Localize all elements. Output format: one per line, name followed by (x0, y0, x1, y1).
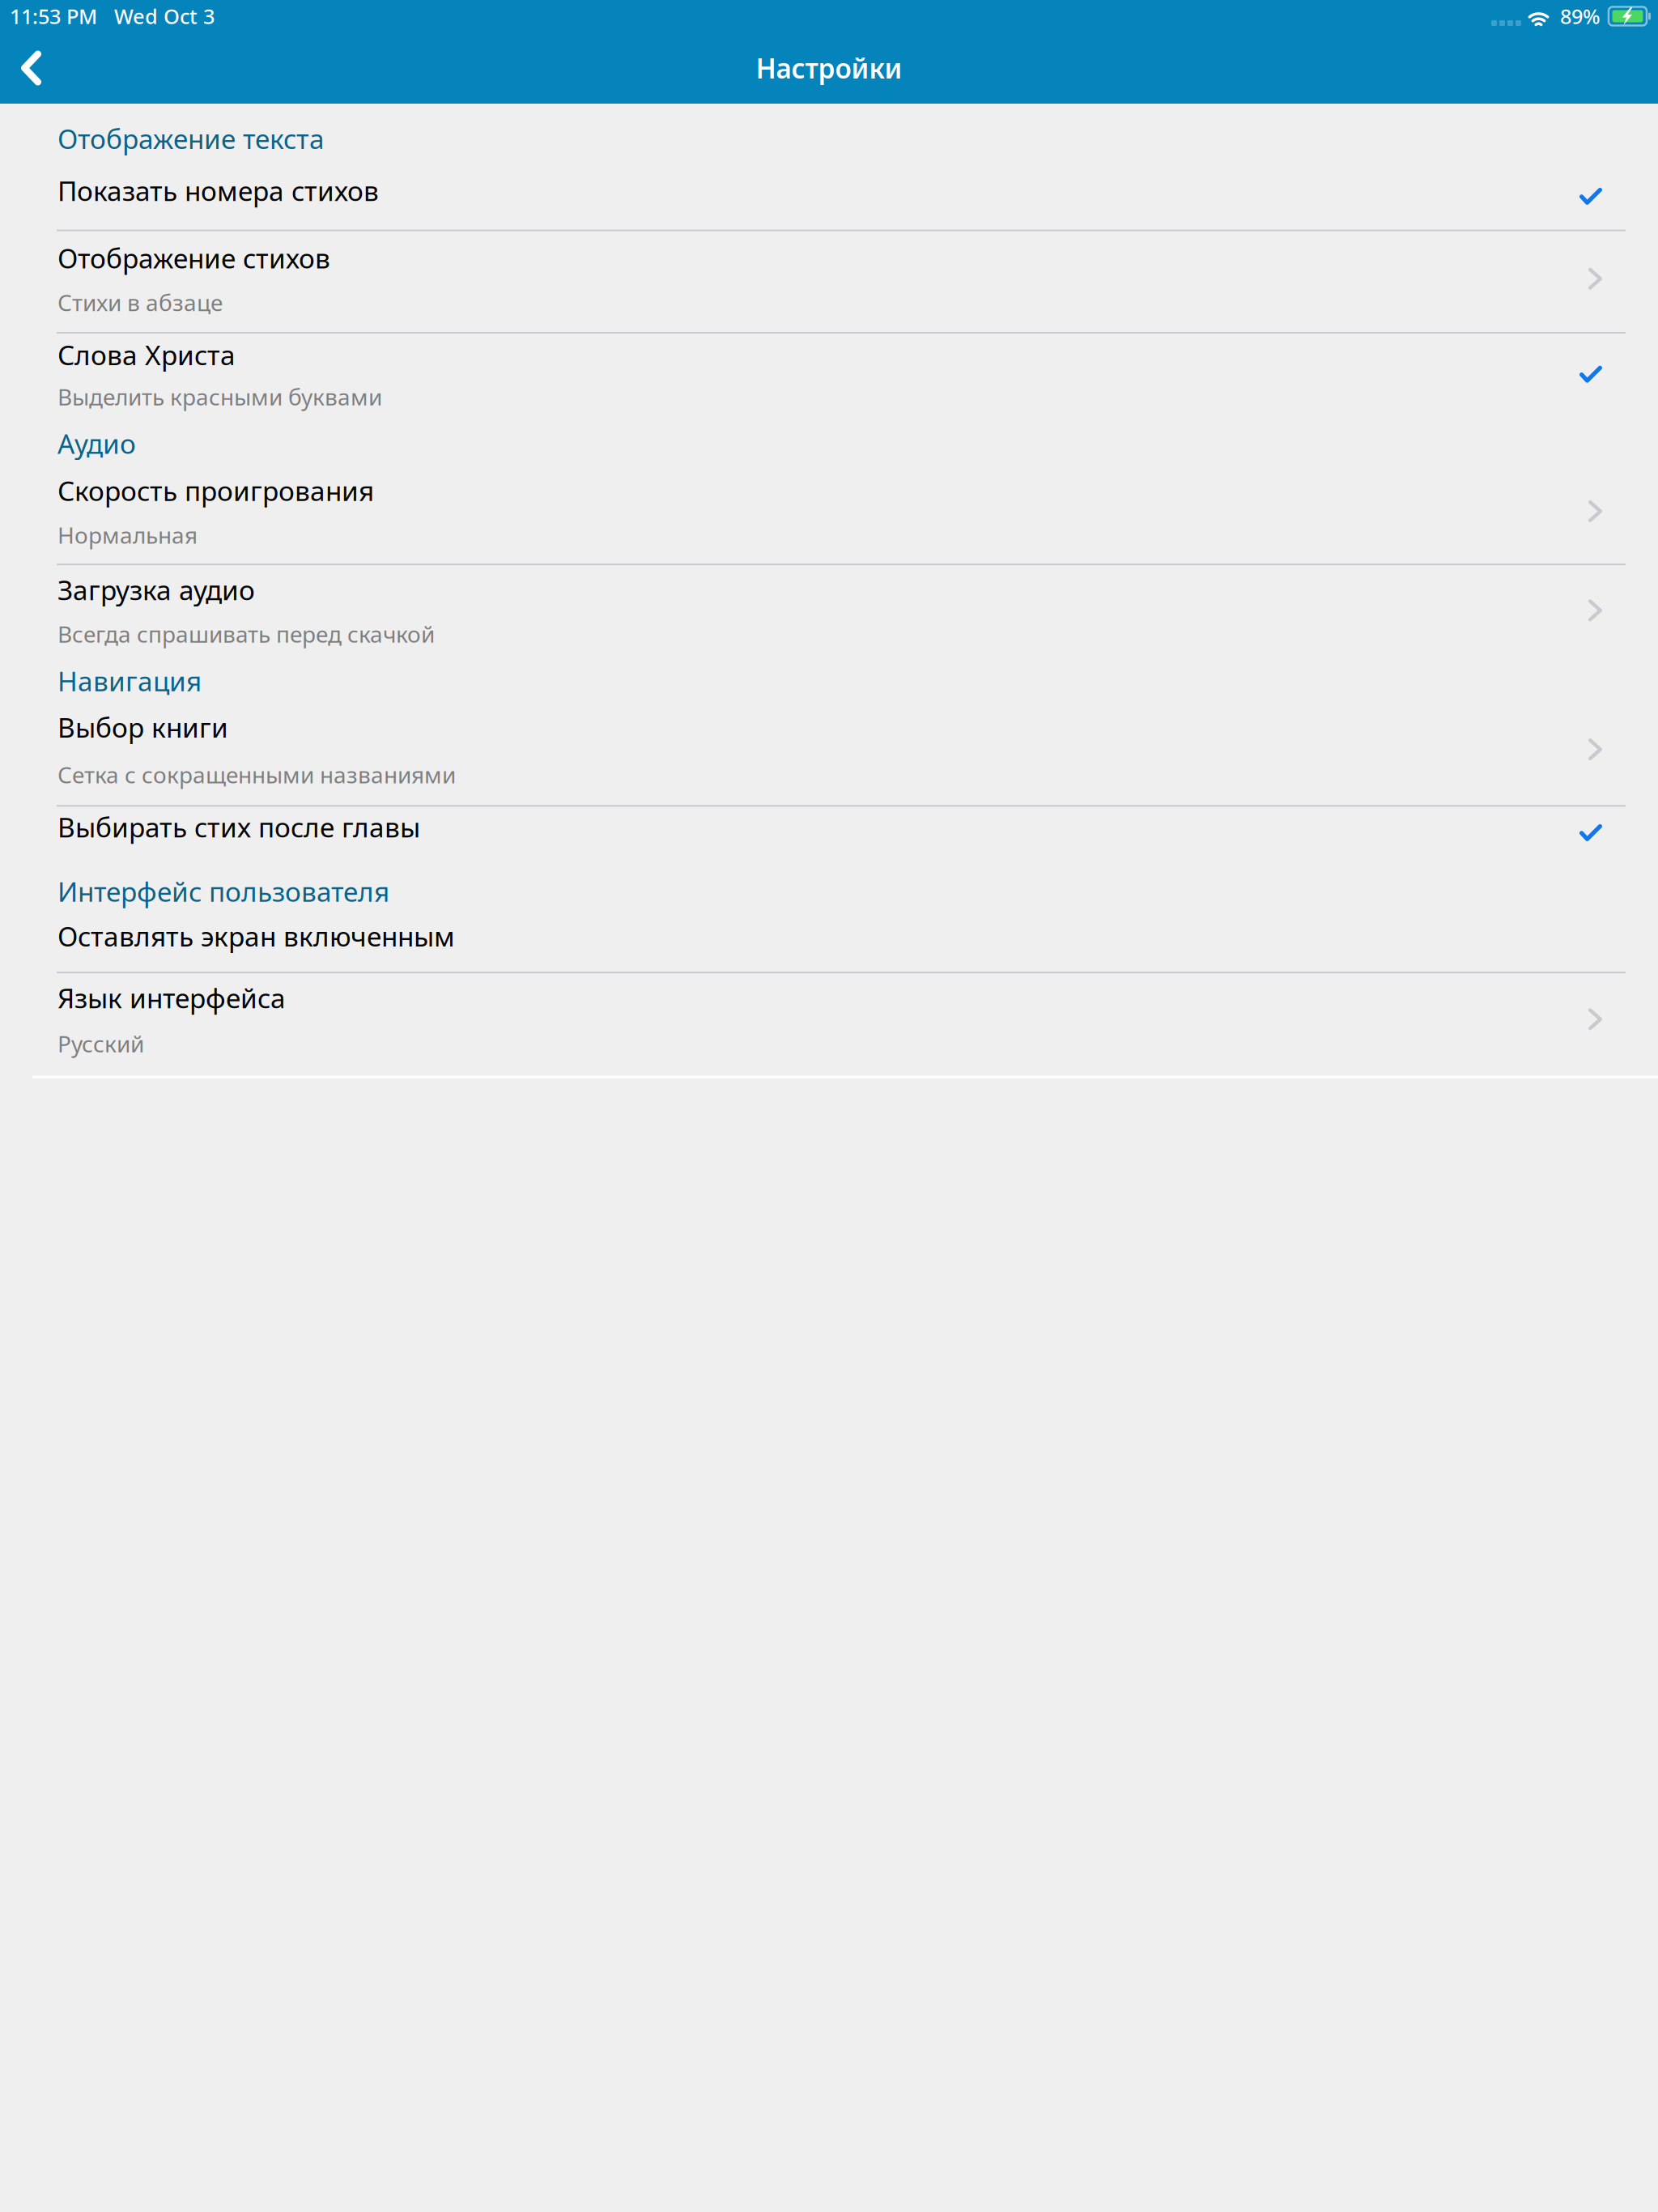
staticText: 89% (1560, 3, 1601, 30)
button[interactable]: Слова Христа (0, 334, 1658, 412)
button[interactable]: Скорость проигрования (0, 473, 1658, 564)
staticText: Выбирать стих после главы (57, 809, 420, 845)
button[interactable]: Язык интерфейса (0, 973, 1658, 1076)
staticText: Русский (57, 1029, 144, 1059)
button[interactable]: Загрузка аудио (0, 565, 1658, 649)
staticText: Всегда спрашивать перед скачкой (57, 619, 435, 649)
staticText: Оставлять экран включенным (57, 918, 455, 954)
staticText: Выбор книги (57, 709, 228, 745)
staticText: Аудио (57, 425, 136, 461)
button[interactable]: Оставлять экран включенным (0, 918, 1658, 972)
staticText: Показать номера стихов (57, 173, 379, 209)
button[interactable]: Выбирать стих после главы (0, 807, 1658, 845)
staticText: Скорость проигрования (57, 473, 374, 508)
staticText: Сетка с сокращенными названиями (57, 760, 456, 790)
staticText: Wed Oct 3 (97, 3, 215, 30)
staticText: Отображение текста (57, 121, 325, 157)
staticText: Язык интерфейса (57, 980, 286, 1016)
staticText: Выделить красными буквами (57, 382, 382, 412)
staticText: Слова Христа (57, 337, 236, 373)
button[interactable]: Отображение стихов (0, 231, 1658, 332)
staticText: Интерфейс пользователя (57, 873, 389, 909)
staticText: Загрузка аудио (57, 572, 255, 608)
staticText: Стихи в абзаце (57, 287, 223, 317)
staticText: Отображение стихов (57, 240, 330, 276)
staticText: Настройки (756, 50, 902, 86)
button[interactable]: Выбор книги (0, 709, 1658, 805)
button[interactable]: Показать номера стихов (0, 173, 1658, 230)
button[interactable]: Back (0, 32, 66, 104)
staticText: Нормальная (57, 520, 198, 550)
staticText: Навигация (57, 663, 202, 699)
staticText: 11:53 PM (10, 3, 97, 30)
